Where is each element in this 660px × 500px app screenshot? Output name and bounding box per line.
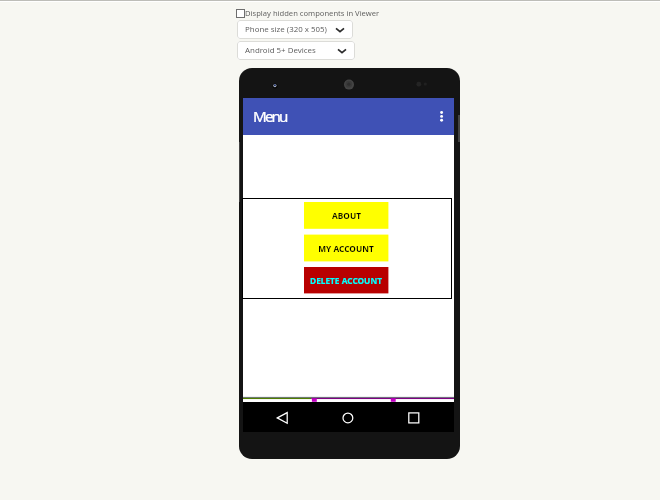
button[interactable]: ABOUT <box>304 202 388 229</box>
button[interactable]: More options <box>430 105 454 129</box>
button[interactable]: Phone size (320 x 505) <box>237 20 353 39</box>
button[interactable]: Android 5+ Devices <box>237 41 355 60</box>
staticText: Menu <box>253 106 287 127</box>
staticText: Android 5+ Devices <box>245 45 316 56</box>
staticText: ABOUT <box>332 210 361 221</box>
staticText: Display hidden components in Viewer <box>245 8 380 18</box>
staticText: DELETE ACCOUNT <box>310 275 382 286</box>
button[interactable]: MY ACCOUNT <box>304 235 388 262</box>
button[interactable]: DELETE ACCOUNT <box>304 267 388 294</box>
staticText: Phone size (320 x 505) <box>245 24 327 35</box>
staticText: MY ACCOUNT <box>318 243 374 254</box>
button[interactable]: Display hidden components in Viewer <box>236 8 380 18</box>
